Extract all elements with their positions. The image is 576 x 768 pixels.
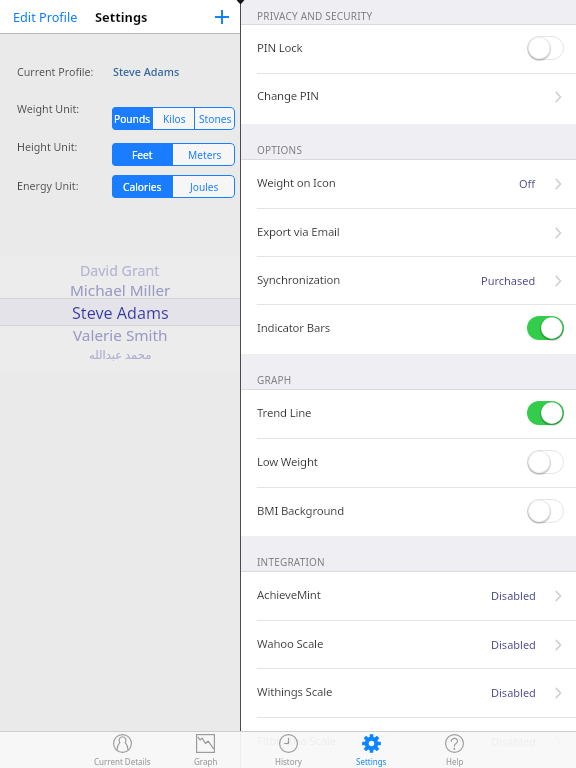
- staticText: Edit Profile: [13, 8, 78, 25]
- button[interactable]: Settings: [330, 732, 413, 768]
- staticText: محمد عبدالله: [89, 347, 152, 363]
- button[interactable]: AchieveMint: [241, 571, 576, 619]
- button[interactable]: Weight on Icon: [241, 159, 576, 207]
- staticText: Help: [446, 756, 464, 767]
- button[interactable]: Kilos: [154, 107, 194, 130]
- staticText: Disabled: [491, 637, 536, 652]
- button[interactable]: Low Weight: [241, 438, 576, 486]
- staticText: Steve Adams: [72, 302, 169, 320]
- staticText: Steve Adams: [113, 64, 180, 79]
- button[interactable]: Help: [413, 732, 496, 768]
- button[interactable]: Fitbit Aria Scale: [241, 717, 576, 765]
- staticText: Current Details: [94, 756, 151, 767]
- staticText: Low Weight: [257, 454, 318, 470]
- staticText: Change PIN: [257, 88, 319, 104]
- staticText: Pounds: [114, 112, 151, 126]
- staticText: Feet: [132, 148, 153, 162]
- staticText: Export via Email: [257, 224, 340, 240]
- staticText: Weight on Icon: [257, 175, 336, 191]
- staticText: BMI Background: [257, 503, 344, 519]
- button[interactable]: Settings: [95, 8, 148, 25]
- button[interactable]: Pounds: [112, 107, 153, 130]
- button[interactable]: Toggle off: [527, 499, 564, 523]
- staticText: Stones: [199, 112, 232, 126]
- button[interactable]: Withings Scale: [241, 668, 576, 716]
- staticText: Valerie Smith: [73, 325, 168, 343]
- button[interactable]: Stones: [195, 107, 235, 130]
- button[interactable]: Meters: [174, 143, 235, 166]
- staticText: PRIVACY AND SECURITY: [257, 9, 373, 23]
- staticText: Wahoo Scale: [257, 636, 324, 652]
- staticText: Disabled: [491, 734, 536, 749]
- button[interactable]: Indicator Bars: [241, 304, 576, 352]
- button[interactable]: Toggle on: [527, 401, 564, 425]
- button[interactable]: BMI Background: [241, 487, 576, 535]
- staticText: Disabled: [491, 685, 536, 700]
- staticText: Off: [519, 176, 536, 191]
- button[interactable]: Edit Profile: [13, 8, 78, 25]
- staticText: Michael Miller: [70, 280, 171, 298]
- staticText: Calories: [123, 180, 162, 194]
- button[interactable]: Export via Email: [241, 208, 576, 256]
- button[interactable]: Trend Line: [241, 389, 576, 437]
- staticText: PIN Lock: [257, 40, 303, 56]
- staticText: INTEGRATION: [257, 555, 325, 569]
- button[interactable]: محمد عبدالله: [0, 347, 240, 365]
- staticText: Meters: [188, 148, 222, 162]
- button[interactable]: Toggle off: [527, 36, 564, 60]
- button[interactable]: Steve Adams: [113, 64, 180, 79]
- staticText: Current Profile:: [17, 65, 94, 80]
- staticText: AchieveMint: [257, 587, 321, 603]
- staticText: David Grant: [80, 261, 160, 279]
- button[interactable]: Change PIN: [241, 72, 576, 120]
- staticText: Withings Scale: [257, 684, 333, 700]
- button[interactable]: Joules: [174, 175, 235, 198]
- staticText: Weight Unit:: [17, 102, 80, 117]
- staticText: Kilos: [163, 112, 186, 126]
- staticText: Trend Line: [257, 405, 312, 421]
- button[interactable]: Add profile: [210, 5, 234, 29]
- button[interactable]: Valerie Smith: [0, 325, 240, 343]
- staticText: Fitbit Aria Scale: [257, 733, 336, 749]
- button[interactable]: PIN Lock: [241, 24, 576, 72]
- staticText: Purchased: [481, 273, 536, 288]
- button[interactable]: Wahoo Scale: [241, 620, 576, 668]
- button[interactable]: Current Details: [81, 732, 164, 768]
- staticText: Indicator Bars: [257, 320, 330, 336]
- button[interactable]: Calories: [112, 175, 173, 198]
- staticText: Joules: [190, 180, 219, 194]
- staticText: Graph: [194, 756, 218, 767]
- staticText: Synchronization: [257, 272, 341, 288]
- button[interactable]: History: [247, 732, 330, 768]
- staticText: Energy Unit:: [17, 179, 79, 194]
- staticText: History: [275, 756, 302, 767]
- button[interactable]: Synchronization: [241, 256, 576, 304]
- button[interactable]: David Grant: [0, 261, 240, 279]
- button[interactable]: Toggle off: [527, 450, 564, 474]
- staticText: GRAPH: [257, 373, 292, 387]
- staticText: OPTIONS: [257, 143, 303, 157]
- button[interactable]: Steve Adams: [0, 302, 240, 320]
- button[interactable]: Toggle on: [527, 316, 564, 340]
- button[interactable]: Feet: [112, 143, 173, 166]
- staticText: Disabled: [491, 588, 536, 603]
- staticText: Settings: [356, 756, 387, 767]
- button[interactable]: Michael Miller: [0, 280, 240, 298]
- staticText: Height Unit:: [17, 140, 78, 155]
- staticText: Settings: [95, 8, 148, 25]
- button[interactable]: Graph: [164, 732, 247, 768]
